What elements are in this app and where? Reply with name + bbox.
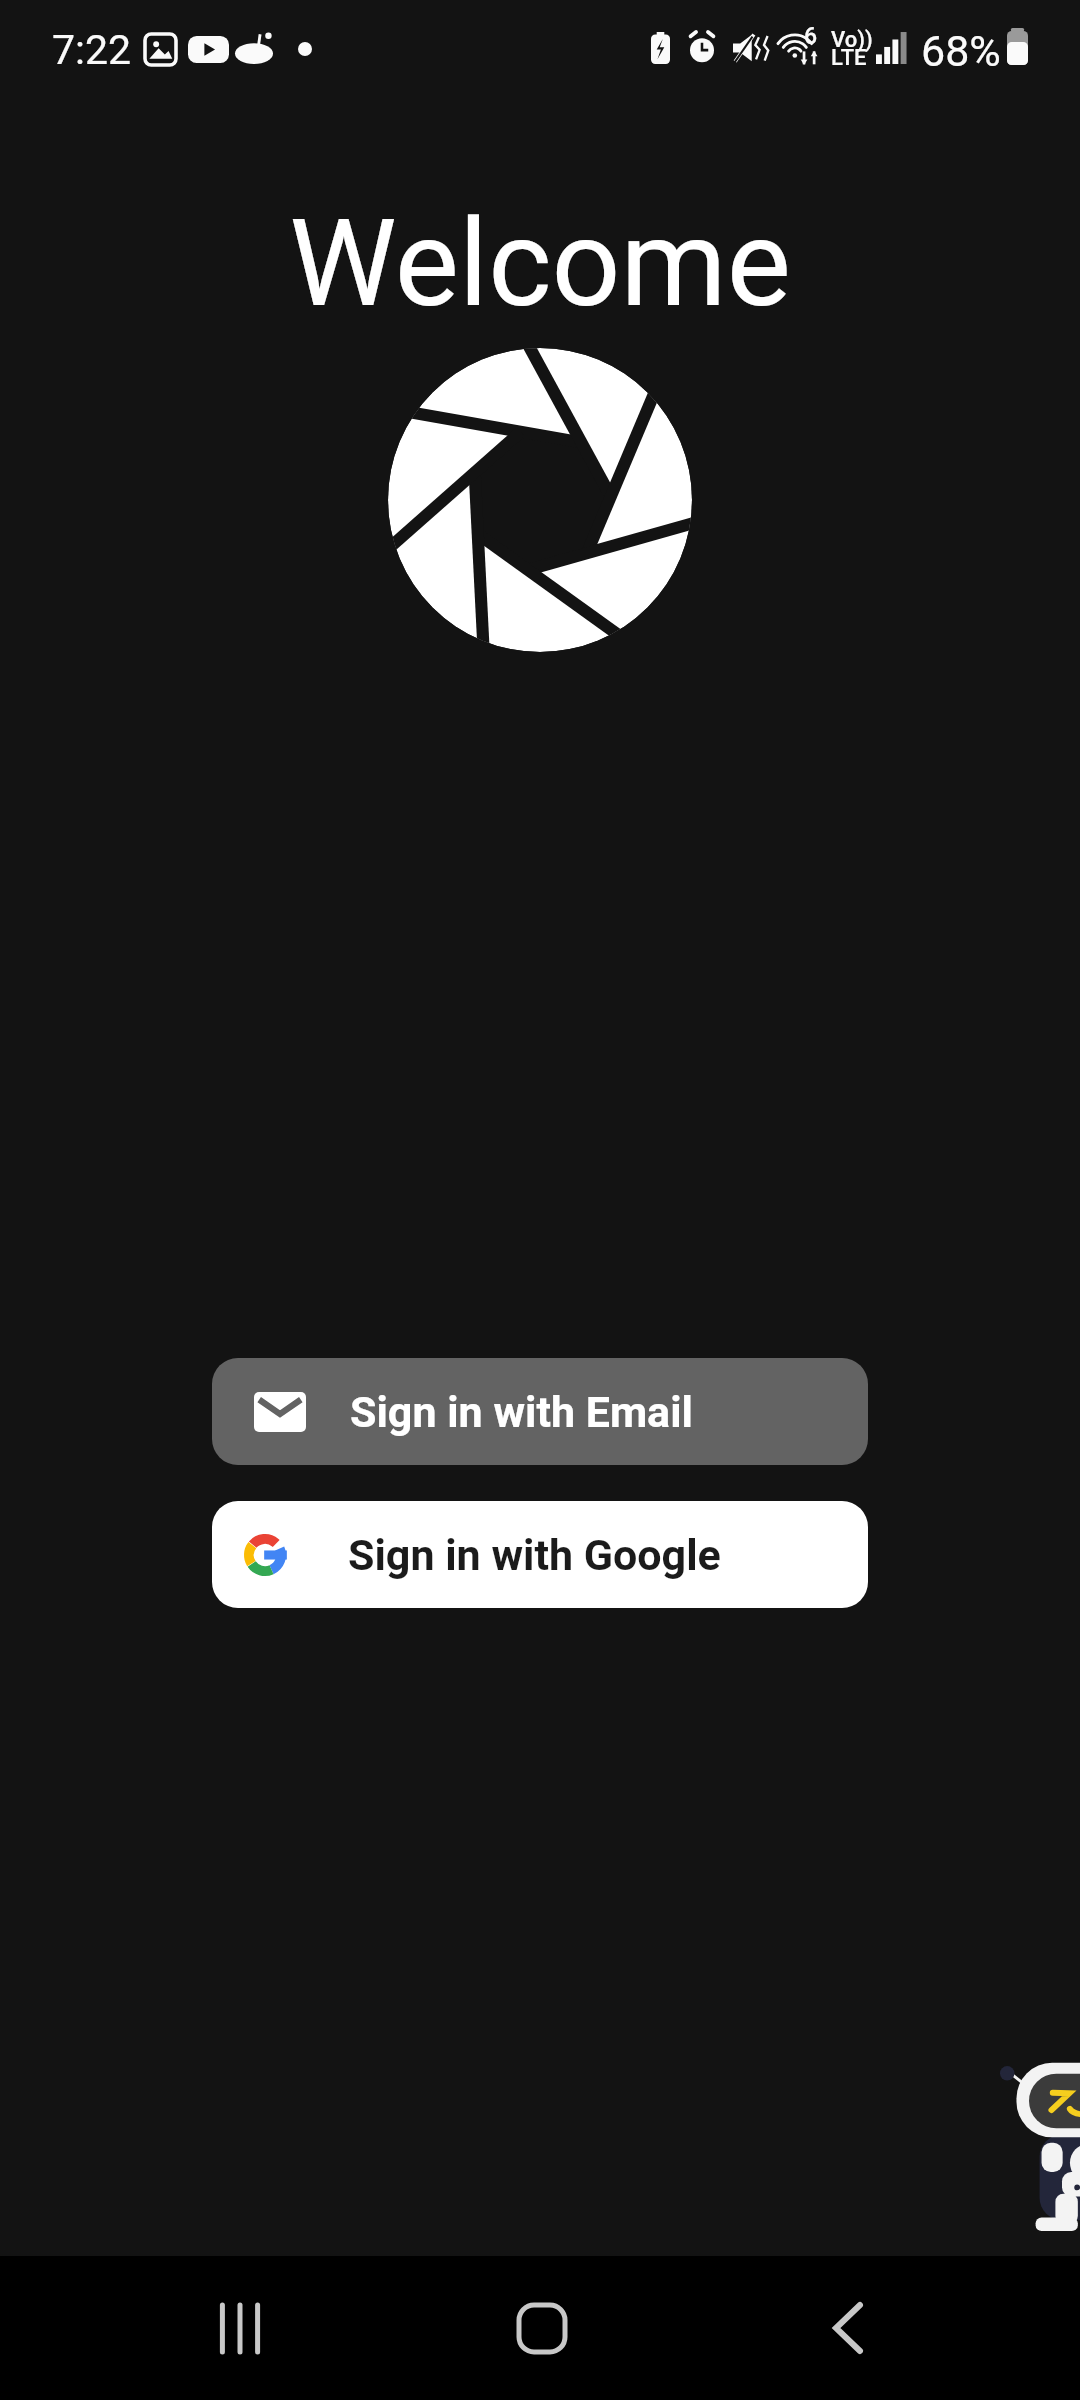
staticText: 68% [921,26,1001,76]
staticText: Sign in with Google [348,1530,721,1580]
staticText: Sign in with Email [350,1387,693,1437]
button[interactable]: Back [788,2268,908,2388]
button[interactable]: Home [480,2268,600,2388]
staticText: LTE [831,45,867,71]
staticText: Vo)) [831,27,873,53]
staticText: Welcome [0,193,1080,335]
staticText: 6 [804,23,818,50]
button[interactable]: Sign in with Google [212,1501,868,1608]
staticText: 7:22 [52,26,132,74]
button[interactable]: Sign in with Email [212,1358,868,1465]
button[interactable]: Recent apps [180,2268,300,2388]
